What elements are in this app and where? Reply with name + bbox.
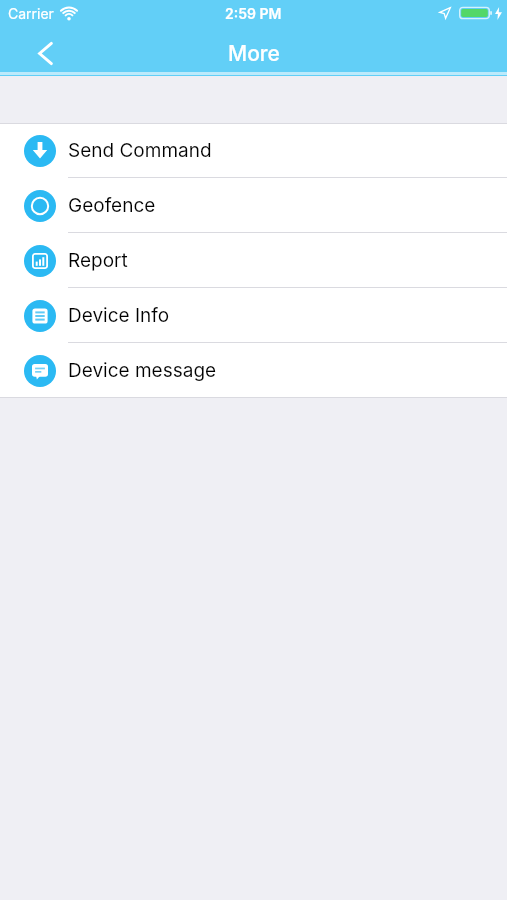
staticText: Device Info [68,304,170,327]
button[interactable]: Device Info [0,288,507,343]
staticText: 2:59 PM [225,5,282,22]
button[interactable]: Send Command [0,123,507,178]
staticText: Carrier [8,5,54,22]
staticText: More [228,41,280,66]
staticText: Device message [68,359,217,382]
button[interactable]: Report [0,233,507,288]
button[interactable]: Device message [0,343,507,398]
staticText: Send Command [68,139,212,162]
button[interactable]: Geofence [0,178,507,233]
button[interactable] [28,36,62,70]
staticText: Report [68,249,128,272]
staticText: Geofence [68,194,156,217]
